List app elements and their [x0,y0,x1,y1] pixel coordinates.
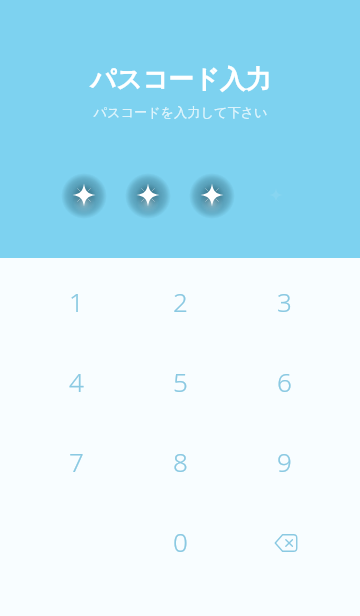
button[interactable]: 6 [232,341,336,421]
button[interactable]: 5 [128,341,232,421]
staticText: パスコード入力 [90,63,271,95]
staticText: 3 [277,284,292,319]
button[interactable]: 3 [232,261,336,341]
staticText: パスコードを入力して下さい [93,104,268,121]
button[interactable]: 7 [24,421,128,501]
button[interactable]: 2 [128,261,232,341]
staticText: 1 [69,284,84,319]
staticText: 0 [173,524,188,559]
staticText: 4 [69,364,84,399]
button[interactable]: 1 [24,261,128,341]
button[interactable]: Backspace [232,501,336,581]
staticText: 5 [173,364,188,399]
staticText: 9 [277,444,292,479]
button[interactable]: 0 [128,501,232,581]
staticText: 7 [69,444,84,479]
staticText: 2 [173,284,188,319]
button[interactable]: 8 [128,421,232,501]
staticText: 6 [277,364,292,399]
button[interactable]: 4 [24,341,128,421]
staticText: 8 [173,444,188,479]
button[interactable]: 9 [232,421,336,501]
